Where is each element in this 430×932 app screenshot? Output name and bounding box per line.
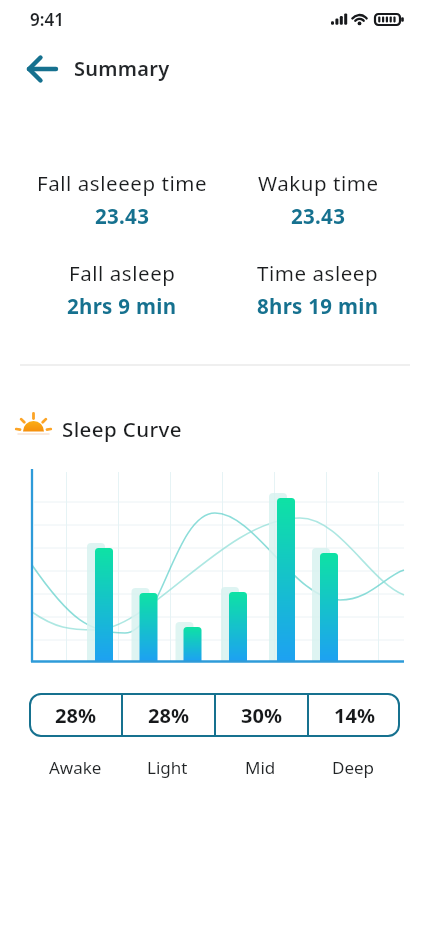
button[interactable]: Wakup time <box>210 169 426 197</box>
button[interactable]: 23.43 <box>210 202 426 230</box>
staticText: Sleep Curve <box>62 415 182 443</box>
staticText: 2hrs 9 min <box>67 292 177 320</box>
staticText: 28% <box>148 702 189 729</box>
button[interactable]: 2hrs 9 min <box>14 292 230 320</box>
button[interactable]: Time asleep <box>210 259 426 287</box>
staticText: 14% <box>334 702 375 729</box>
button[interactable]: 14% <box>309 693 400 737</box>
staticText: Fall asleeep time <box>37 169 208 197</box>
button[interactable]: Fall asleep <box>14 259 230 287</box>
button[interactable]: 8hrs 19 min <box>210 292 426 320</box>
button[interactable] <box>18 50 66 88</box>
button[interactable]: 28% <box>29 693 121 737</box>
staticText: 23.43 <box>95 202 150 230</box>
staticText: 9:41 <box>30 8 64 31</box>
button[interactable]: 23.43 <box>14 202 230 230</box>
button[interactable]: Fall asleeep time <box>14 169 230 197</box>
staticText: 30% <box>241 702 282 729</box>
staticText: Awake <box>49 756 102 779</box>
staticText: Mid <box>245 756 276 779</box>
staticText: Fall asleep <box>69 259 176 287</box>
staticText: Light <box>147 756 188 779</box>
staticText: 23.43 <box>291 202 346 230</box>
staticText: 8hrs 19 min <box>257 292 379 320</box>
staticText: Deep <box>332 756 375 779</box>
staticText: Wakup time <box>258 169 379 197</box>
staticText: Summary <box>74 55 170 82</box>
staticText: 28% <box>55 702 96 729</box>
button[interactable]: 30% <box>216 693 307 737</box>
staticText: Time asleep <box>257 259 379 287</box>
button[interactable]: 28% <box>123 693 214 737</box>
